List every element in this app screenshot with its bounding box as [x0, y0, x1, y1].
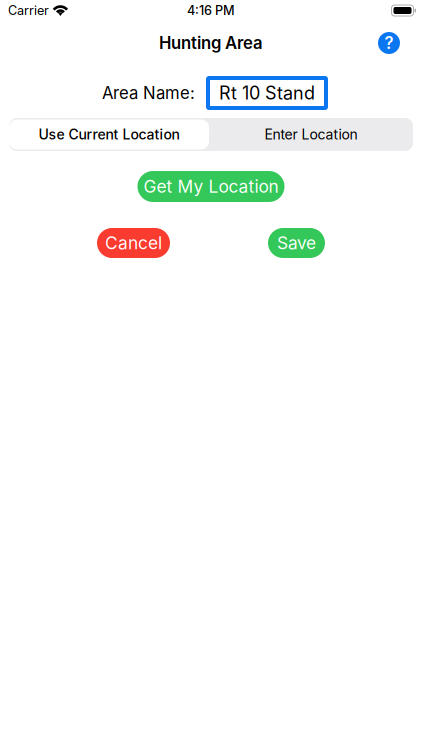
button[interactable]: Cancel	[97, 228, 170, 258]
button[interactable]: Use Current Location	[9, 119, 209, 149]
button[interactable]: Save	[268, 228, 325, 258]
staticText: 4:16 PM	[187, 3, 235, 18]
button[interactable]: Get My Location	[137, 171, 284, 202]
button[interactable]: Enter Location	[209, 119, 413, 149]
staticText: Carrier	[8, 3, 49, 18]
staticText: Use Current Location	[38, 126, 179, 143]
button[interactable]: Rt 10 Stand	[206, 76, 328, 110]
button[interactable]: Help	[375, 31, 403, 55]
staticText: Area Name:	[102, 83, 195, 103]
staticText: Save	[277, 232, 316, 253]
staticText: Enter Location	[264, 126, 357, 143]
staticText: Get My Location	[143, 176, 278, 197]
staticText: ?	[384, 33, 393, 53]
staticText: Cancel	[105, 232, 162, 253]
staticText: Hunting Area	[159, 33, 263, 53]
staticText: Rt 10 Stand	[219, 82, 315, 104]
